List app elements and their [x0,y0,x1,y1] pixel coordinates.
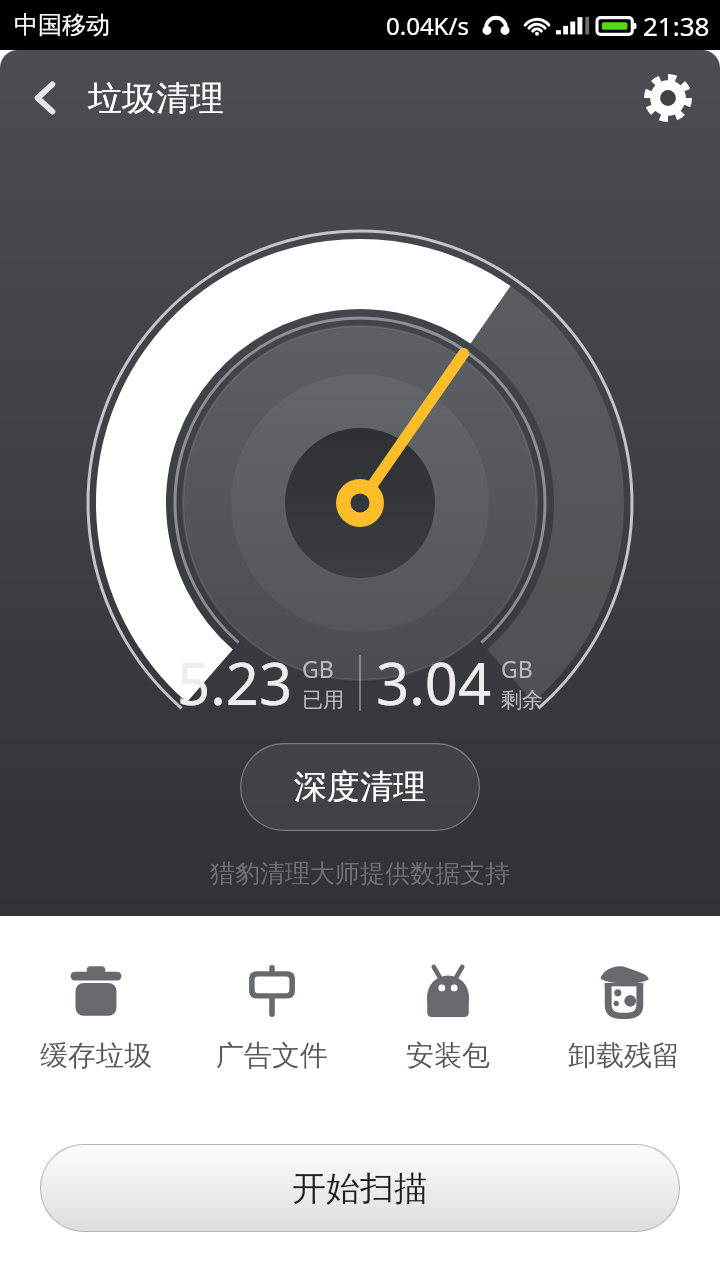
staticText: 已用 [302,687,344,713]
staticText: 缓存垃圾 [40,1038,152,1073]
button[interactable]: 广告文件 [192,956,352,1077]
staticText: 开始扫描 [292,1167,428,1210]
button[interactable]: Settings [634,64,702,132]
button[interactable]: 卸载残留 [544,956,704,1077]
staticText: 剩余 [501,687,543,713]
button[interactable]: 安装包 [368,956,528,1077]
staticText: 3.04 [376,643,492,722]
staticText: 垃圾清理 [88,77,224,120]
staticText: 猎豹清理大师提供数据支持 [210,858,510,889]
staticText: 5.23 [177,643,293,722]
button[interactable]: 缓存垃圾 [16,956,176,1077]
staticText: GB [302,653,334,684]
staticText: 安装包 [406,1038,490,1073]
button[interactable]: Back [10,63,80,133]
button[interactable]: 深度清理 [240,743,480,831]
staticText: 中国移动 [14,10,110,40]
button[interactable]: 开始扫描 [40,1144,680,1232]
staticText: 深度清理 [294,766,426,808]
staticText: 21:38 [643,8,710,43]
staticText: 卸载残留 [568,1038,680,1073]
staticText: GB [501,653,533,684]
staticText: 广告文件 [216,1038,328,1073]
staticText: 0.04K/s [386,9,469,42]
